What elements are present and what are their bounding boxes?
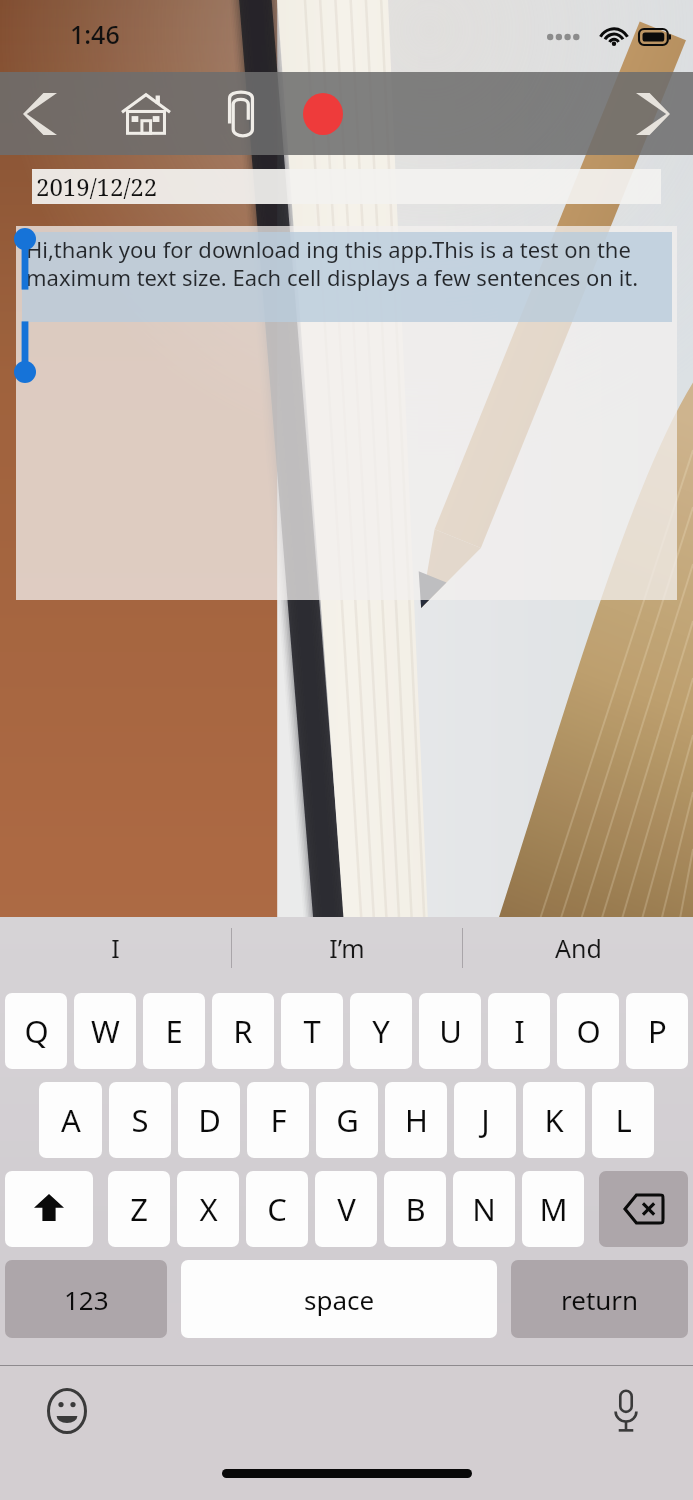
button[interactable]: W [74, 993, 136, 1069]
button[interactable]: L [592, 1082, 654, 1158]
staticText: 123 [64, 1282, 109, 1317]
button[interactable]: Z [108, 1171, 170, 1247]
staticText: R [233, 1010, 253, 1052]
staticText: 1:46 [70, 17, 120, 51]
staticText: W [91, 1010, 120, 1052]
button[interactable]: O [557, 993, 619, 1069]
button[interactable]: A [39, 1082, 102, 1158]
staticText: C [267, 1188, 287, 1230]
staticText: Y [372, 1010, 390, 1052]
staticText: V [337, 1188, 356, 1230]
button[interactable]: C [246, 1171, 308, 1247]
staticText: L [615, 1099, 632, 1141]
button[interactable]: Hi,thank you for download ing this app.T… [16, 226, 677, 600]
staticText: E [165, 1010, 183, 1052]
staticText: D [198, 1099, 221, 1141]
button[interactable]: T [281, 993, 343, 1069]
button[interactable]: And [463, 917, 693, 979]
staticText: M [539, 1188, 568, 1230]
staticText: T [303, 1010, 321, 1052]
staticText: Z [130, 1188, 148, 1230]
staticText: S [131, 1099, 149, 1141]
button[interactable]: I [0, 917, 231, 979]
button[interactable]: P [626, 993, 688, 1069]
staticText: G [336, 1099, 359, 1141]
staticText: F [270, 1099, 287, 1141]
button[interactable]: F [247, 1082, 309, 1158]
button[interactable]: N [453, 1171, 515, 1247]
staticText: N [472, 1188, 496, 1230]
staticText: I’m [329, 931, 365, 965]
button[interactable]: H [385, 1082, 447, 1158]
button[interactable]: Y [350, 993, 412, 1069]
button[interactable]: Back [12, 86, 68, 142]
button[interactable]: X [177, 1171, 239, 1247]
button[interactable]: Forward [625, 86, 681, 142]
button[interactable]: V [315, 1171, 377, 1247]
staticText: U [439, 1010, 462, 1052]
button[interactable]: I’m [232, 917, 462, 979]
staticText: B [405, 1188, 426, 1230]
staticText: space [304, 1282, 375, 1317]
button[interactable]: R [212, 993, 274, 1069]
button[interactable]: Home [115, 83, 177, 145]
staticText: X [199, 1188, 218, 1230]
button[interactable]: S [109, 1082, 171, 1158]
staticText: And [555, 931, 602, 965]
staticText: J [481, 1099, 490, 1141]
button[interactable]: 2019/12/22 [32, 169, 661, 204]
button[interactable]: Dictate [595, 1380, 657, 1442]
staticText: K [544, 1099, 564, 1141]
staticText: O [576, 1010, 601, 1052]
button[interactable]: J [454, 1082, 516, 1158]
staticText: P [648, 1010, 667, 1052]
staticText: A [61, 1099, 81, 1141]
button[interactable]: B [384, 1171, 446, 1247]
button[interactable]: I [488, 993, 550, 1069]
button[interactable]: return [511, 1260, 688, 1338]
button[interactable]: Record [292, 83, 354, 145]
staticText: Hi,thank you for download ing this app.T… [26, 234, 665, 292]
staticText: Q [24, 1010, 49, 1052]
staticText: H [405, 1099, 428, 1141]
button[interactable]: Shift [5, 1171, 93, 1247]
button[interactable]: Attach [212, 85, 270, 143]
staticText: I [514, 1010, 525, 1052]
staticText: return [561, 1282, 639, 1317]
staticText: I [111, 931, 120, 965]
button[interactable]: E [143, 993, 205, 1069]
button[interactable]: G [316, 1082, 378, 1158]
button[interactable]: Emoji [36, 1380, 98, 1442]
button[interactable]: U [419, 993, 481, 1069]
button[interactable]: space [181, 1260, 497, 1338]
button[interactable]: M [522, 1171, 584, 1247]
button[interactable]: 123 [5, 1260, 167, 1338]
button[interactable]: K [523, 1082, 585, 1158]
staticText: 2019/12/22 [36, 170, 158, 203]
button[interactable]: Q [5, 993, 67, 1069]
button[interactable]: Backspace [599, 1171, 688, 1247]
button[interactable]: D [178, 1082, 240, 1158]
